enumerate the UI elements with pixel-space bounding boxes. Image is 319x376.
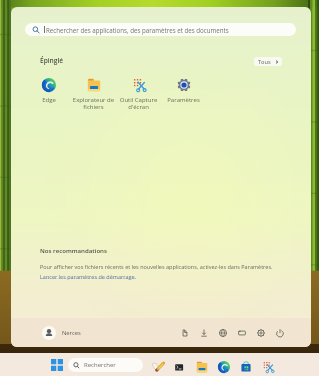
button[interactable]: Rechercher — [68, 358, 143, 372]
button[interactable]: Paint — [147, 356, 169, 376]
staticText: Rechercher des applications, des paramèt… — [46, 26, 229, 34]
button[interactable]: Documents — [175, 323, 194, 342]
button[interactable]: Démarrer — [48, 356, 66, 374]
button[interactable]: Images — [213, 323, 232, 342]
staticText: Paramètres — [167, 96, 200, 104]
button[interactable]: Rechercher des applications, des paramèt… — [25, 23, 296, 36]
button[interactable]: Terminal — [169, 356, 191, 376]
button[interactable]: Explorateur de fichiers — [191, 356, 213, 376]
button[interactable]: Téléchargements — [194, 323, 213, 342]
button[interactable]: Tous — [254, 57, 282, 66]
staticText: Outil Capture d'écran — [116, 96, 161, 111]
staticText: Explorateur de fichiers — [71, 96, 116, 111]
button[interactable]: Microsoft Store — [235, 356, 257, 376]
staticText: Nerces — [62, 329, 81, 337]
button[interactable]: Vidéos — [232, 323, 251, 342]
staticText: Épinglé — [40, 56, 64, 65]
staticText: Pour afficher vos fichiers récents et le… — [40, 263, 273, 270]
staticText: Nos recommandations — [40, 246, 107, 254]
button[interactable]: Marche/Arrêt — [270, 323, 289, 342]
button[interactable]: Edge — [26, 72, 71, 114]
button[interactable]: Outil Capture d'écran — [257, 356, 279, 376]
button[interactable]: Paramètres — [251, 323, 270, 342]
button[interactable]: Nerces — [40, 322, 83, 343]
button[interactable]: Outil Capture d'écran — [116, 72, 161, 114]
staticText: Rechercher — [84, 361, 116, 369]
staticText: Edge — [42, 96, 56, 104]
button[interactable]: Paramètres — [161, 72, 206, 114]
button[interactable]: Lancer les paramètres de démarrage. — [40, 273, 137, 280]
button[interactable]: Edge — [213, 356, 235, 376]
button[interactable]: Explorateur de fichiers — [71, 72, 116, 114]
staticText: Tous — [258, 58, 271, 66]
